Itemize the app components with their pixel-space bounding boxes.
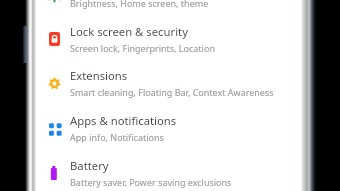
staticText: Apps & notifications <box>70 113 177 128</box>
button[interactable]: Extensions <box>36 60 301 105</box>
button[interactable]: Lock screen & security <box>36 16 301 61</box>
staticText: Battery saver, Power saving exclusions <box>70 176 232 188</box>
button[interactable]: Display <box>36 0 301 16</box>
staticText: App info, Notifications <box>70 131 164 143</box>
staticText: Smart cleaning, Floating Bar, Context Aw… <box>70 86 274 98</box>
staticText: Lock screen & security <box>70 24 188 39</box>
staticText: Battery <box>70 158 109 173</box>
staticText: Brightness, Home screen, theme <box>70 0 209 9</box>
staticText: Extensions <box>70 68 128 83</box>
button[interactable]: Battery <box>36 150 301 191</box>
button[interactable]: Apps & notifications <box>36 105 301 150</box>
staticText: Screen lock, Fingerprints, Location <box>70 42 215 54</box>
